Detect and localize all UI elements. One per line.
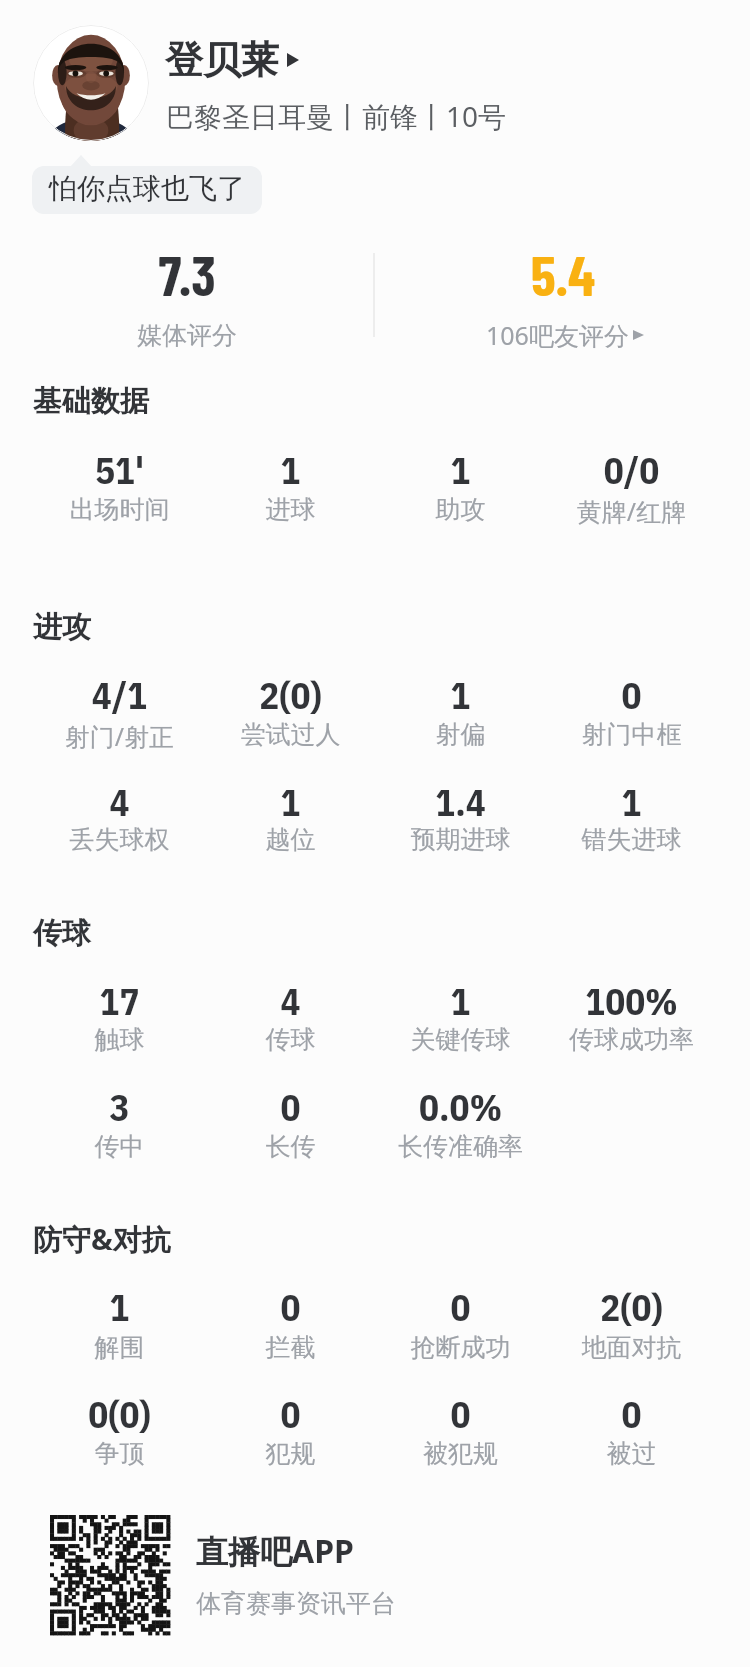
- staticText: 抢断成功: [375, 1332, 546, 1363]
- button[interactable]: [375, 774, 546, 850]
- staticText: 0: [205, 1390, 376, 1438]
- staticText: 黄牌/红牌: [546, 494, 717, 528]
- staticText: 被犯规: [375, 1438, 546, 1469]
- staticText: 媒体评分: [0, 320, 374, 351]
- staticText: 触球: [34, 1024, 205, 1055]
- button[interactable]: [34, 973, 205, 1050]
- staticText: 被过: [546, 1438, 717, 1469]
- button[interactable]: [205, 1386, 376, 1464]
- button[interactable]: [205, 973, 376, 1050]
- staticText: 传球: [33, 915, 91, 952]
- staticText: 进攻: [33, 609, 91, 646]
- staticText: 拦截: [205, 1332, 376, 1363]
- button[interactable]: [546, 973, 717, 1050]
- staticText: 1: [34, 1283, 205, 1331]
- button[interactable]: [34, 1386, 205, 1464]
- staticText: 解围: [34, 1332, 205, 1363]
- button[interactable]: 怕你点球也飞了: [32, 166, 262, 214]
- staticText: 进球: [205, 494, 376, 525]
- staticText: 5.4: [376, 240, 750, 307]
- staticText: 2(0): [546, 1283, 717, 1331]
- staticText: 射偏: [375, 719, 546, 750]
- staticText: 直播吧APP: [196, 1529, 354, 1573]
- staticText: 0: [546, 671, 717, 719]
- staticText: 1: [205, 778, 376, 826]
- button[interactable]: [546, 1386, 717, 1464]
- button[interactable]: 球员头像: [33, 25, 149, 141]
- staticText: 关键传球: [375, 1024, 546, 1055]
- staticText: 1: [546, 778, 717, 826]
- staticText: 长传: [205, 1131, 376, 1162]
- button[interactable]: [205, 1079, 376, 1157]
- staticText: 1: [375, 446, 546, 494]
- staticText: 4/1: [34, 671, 205, 719]
- staticText: 1: [375, 977, 546, 1025]
- button[interactable]: [34, 1079, 205, 1157]
- staticText: 0: [205, 1083, 376, 1131]
- button[interactable]: [34, 774, 205, 850]
- button[interactable]: [546, 442, 717, 520]
- staticText: 0(0): [34, 1390, 205, 1438]
- staticText: 2(0): [205, 671, 376, 719]
- staticText: 预期进球: [375, 824, 546, 855]
- staticText: 0: [205, 1283, 376, 1331]
- button[interactable]: [34, 1279, 205, 1358]
- staticText: 登贝莱: [165, 36, 279, 84]
- staticText: 0/0: [546, 446, 717, 494]
- staticText: 怕你点球也飞了: [42, 171, 252, 206]
- staticText: 丢失球权: [34, 824, 205, 855]
- staticText: 4: [205, 977, 376, 1025]
- button[interactable]: [375, 973, 546, 1050]
- staticText: 争顶: [34, 1438, 205, 1469]
- staticText: 1: [205, 446, 376, 494]
- staticText: 51': [34, 446, 205, 494]
- staticText: 体育赛事资讯平台: [196, 1588, 396, 1619]
- button[interactable]: [205, 774, 376, 850]
- staticText: 106吧友评分: [486, 318, 629, 352]
- staticText: 0: [546, 1390, 717, 1438]
- button[interactable]: [375, 442, 546, 520]
- button[interactable]: [375, 1079, 546, 1157]
- staticText: 0: [375, 1390, 546, 1438]
- staticText: 0: [375, 1283, 546, 1331]
- button[interactable]: [376, 245, 750, 350]
- button[interactable]: [546, 667, 717, 745]
- button[interactable]: [546, 1279, 717, 1358]
- staticText: 射门/射正: [34, 719, 205, 753]
- staticText: 地面对抗: [546, 1332, 717, 1363]
- staticText: 基础数据: [33, 383, 149, 420]
- staticText: 1.4: [375, 778, 546, 826]
- staticText: 7.3: [0, 240, 374, 307]
- button[interactable]: [0, 245, 374, 350]
- staticText: 助攻: [375, 494, 546, 525]
- button[interactable]: 登贝莱: [165, 36, 291, 84]
- staticText: 传球: [205, 1024, 376, 1055]
- button[interactable]: [546, 774, 717, 850]
- staticText: 越位: [205, 824, 376, 855]
- staticText: 错失进球: [546, 824, 717, 855]
- staticText: 尝试过人: [205, 719, 376, 750]
- staticText: 3: [34, 1083, 205, 1131]
- staticText: 17: [34, 977, 205, 1025]
- staticText: 100%: [546, 977, 717, 1025]
- staticText: 1: [375, 671, 546, 719]
- button[interactable]: 下载直播吧APP: [40, 1505, 410, 1645]
- staticText: 防守&对抗: [33, 1219, 171, 1259]
- staticText: 传中: [34, 1131, 205, 1162]
- button[interactable]: [375, 1279, 546, 1358]
- staticText: 出场时间: [34, 494, 205, 525]
- staticText: 巴黎圣日耳曼丨前锋丨10号: [166, 97, 507, 135]
- staticText: 长传准确率: [375, 1131, 546, 1162]
- button[interactable]: [34, 442, 205, 520]
- staticText: 传球成功率: [546, 1024, 717, 1055]
- button[interactable]: [34, 667, 205, 745]
- button[interactable]: [205, 1279, 376, 1358]
- button[interactable]: [205, 667, 376, 745]
- button[interactable]: [375, 667, 546, 745]
- button[interactable]: [375, 1386, 546, 1464]
- staticText: 射门中框: [546, 719, 717, 750]
- staticText: 0.0%: [375, 1083, 546, 1131]
- staticText: 4: [34, 778, 205, 826]
- staticText: 犯规: [205, 1438, 376, 1469]
- button[interactable]: [205, 442, 376, 520]
